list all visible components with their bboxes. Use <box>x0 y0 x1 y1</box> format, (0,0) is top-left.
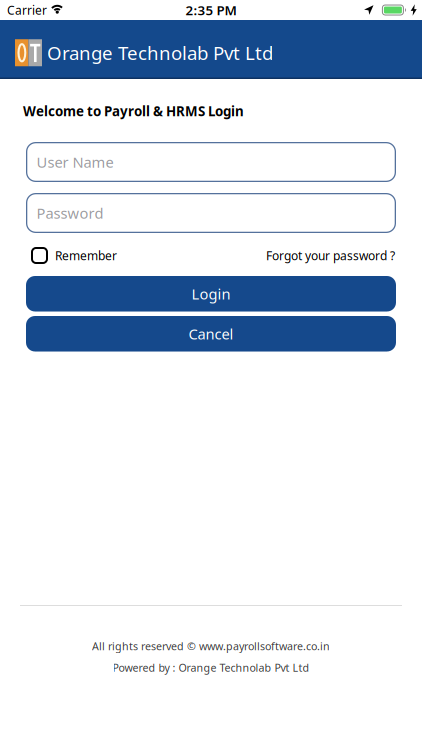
staticText: Orange Technolab Pvt Ltd <box>47 40 273 65</box>
staticText: Welcome to Payroll & HRMS Login <box>23 102 244 120</box>
staticText: User Name <box>36 152 113 172</box>
staticText: Login <box>191 284 230 303</box>
button[interactable]: User Name <box>26 142 396 182</box>
button[interactable]: Forgot your password ? <box>266 247 395 263</box>
staticText: Remember <box>55 247 117 263</box>
staticText: Powered by : Orange Technolab Pvt Ltd <box>112 660 309 675</box>
button[interactable]: Password <box>26 193 396 233</box>
staticText: Cancel <box>188 324 233 343</box>
button[interactable]: Cancel <box>26 316 396 351</box>
staticText: All rights reserved © www.payrollsoftwar… <box>92 639 330 653</box>
staticText: Password <box>36 203 103 223</box>
button[interactable]: Remember <box>31 247 117 264</box>
staticText: Carrier <box>7 2 47 18</box>
staticText: Forgot your password ? <box>266 247 395 263</box>
button[interactable]: Login <box>26 276 396 311</box>
staticText: 2:35 PM <box>185 1 236 19</box>
